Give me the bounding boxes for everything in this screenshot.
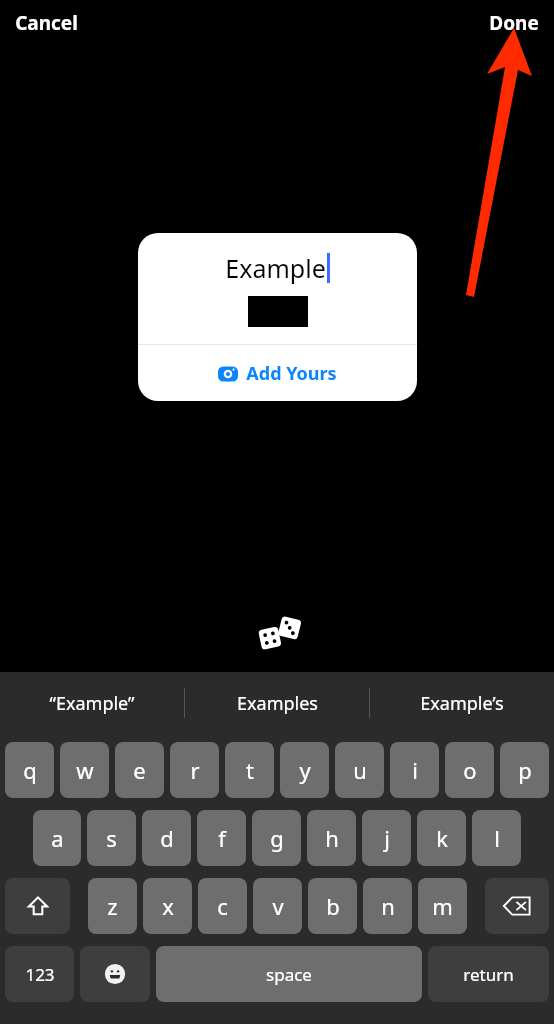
- button[interactable]: b: [308, 878, 357, 934]
- staticText: h: [325, 823, 339, 853]
- button[interactable]: z: [88, 878, 137, 934]
- staticText: y: [299, 755, 311, 785]
- staticText: b: [326, 891, 340, 921]
- staticText: g: [270, 823, 284, 853]
- button[interactable]: n: [363, 878, 412, 934]
- button[interactable]: “Example”: [0, 672, 184, 734]
- button[interactable]: Done: [486, 4, 542, 42]
- staticText: l: [494, 823, 500, 853]
- staticText: f: [218, 823, 226, 853]
- button[interactable]: space: [156, 946, 422, 1002]
- button[interactable]: Example’s: [370, 672, 554, 734]
- button[interactable]: v: [253, 878, 302, 934]
- staticText: p: [518, 755, 532, 785]
- staticText: Add Yours: [246, 361, 337, 386]
- button[interactable]: p: [500, 742, 549, 798]
- button[interactable]: Add Yours: [138, 345, 417, 401]
- staticText: w: [76, 755, 94, 785]
- button[interactable]: l: [472, 810, 521, 866]
- button[interactable]: u: [335, 742, 384, 798]
- button[interactable]: d: [142, 810, 191, 866]
- staticText: r: [190, 755, 200, 785]
- staticText: n: [381, 891, 395, 921]
- button[interactable]: c: [198, 878, 247, 934]
- staticText: m: [432, 891, 453, 921]
- staticText: t: [246, 755, 254, 785]
- staticText: d: [160, 823, 174, 853]
- staticText: i: [412, 755, 418, 785]
- button[interactable]: i: [390, 742, 439, 798]
- button[interactable]: 123: [5, 946, 74, 1002]
- button[interactable]: Shift: [5, 878, 70, 934]
- button[interactable]: Examples: [185, 672, 369, 734]
- staticText: e: [133, 755, 146, 785]
- staticText: s: [106, 823, 117, 853]
- button[interactable]: Emoji keyboard: [80, 946, 150, 1002]
- staticText: a: [51, 823, 64, 853]
- staticText: k: [436, 823, 448, 853]
- staticText: c: [217, 891, 228, 921]
- staticText: Examples: [237, 691, 318, 716]
- button[interactable]: e: [115, 742, 164, 798]
- button[interactable]: t: [225, 742, 274, 798]
- button[interactable]: y: [280, 742, 329, 798]
- staticText: z: [107, 891, 118, 921]
- staticText: return: [463, 963, 514, 986]
- button[interactable]: return: [428, 946, 549, 1002]
- staticText: Done: [489, 10, 539, 36]
- button[interactable]: m: [418, 878, 467, 934]
- button[interactable]: a: [33, 810, 81, 866]
- button[interactable]: r: [170, 742, 219, 798]
- staticText: o: [463, 755, 477, 785]
- staticText: q: [23, 755, 37, 785]
- button[interactable]: Cancel: [12, 4, 81, 42]
- button[interactable]: w: [60, 742, 109, 798]
- staticText: u: [353, 755, 367, 785]
- staticText: Example’s: [420, 691, 504, 716]
- staticText: space: [266, 963, 312, 986]
- staticText: x: [162, 891, 174, 921]
- button[interactable]: k: [417, 810, 466, 866]
- staticText: j: [384, 823, 390, 853]
- button[interactable]: o: [445, 742, 494, 798]
- button[interactable]: q: [5, 742, 54, 798]
- staticText: Cancel: [15, 10, 78, 36]
- button[interactable]: h: [307, 810, 356, 866]
- staticText: “Example”: [49, 691, 135, 716]
- button[interactable]: f: [197, 810, 246, 866]
- staticText: 123: [25, 963, 55, 986]
- staticText: Example: [225, 251, 326, 285]
- button[interactable]: g: [252, 810, 301, 866]
- staticText: v: [272, 891, 284, 921]
- button[interactable]: j: [362, 810, 411, 866]
- button[interactable]: x: [143, 878, 192, 934]
- button[interactable]: s: [87, 810, 136, 866]
- button[interactable]: Backspace: [485, 878, 549, 934]
